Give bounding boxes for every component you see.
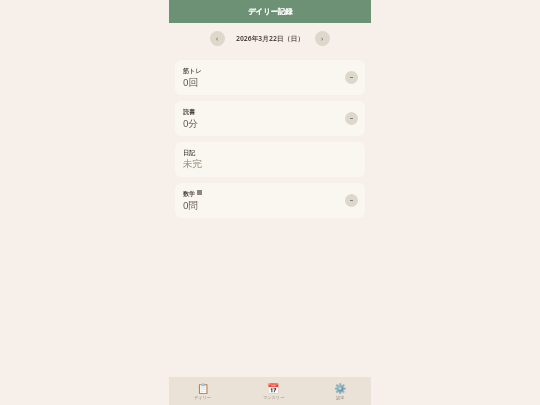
staticText: 2026年3月22日（日） bbox=[236, 34, 304, 43]
button[interactable]: Decrease bbox=[345, 71, 358, 84]
staticText: デイリー記録 bbox=[248, 7, 293, 16]
button[interactable]: 📋 bbox=[169, 383, 237, 400]
button[interactable]: 📅 bbox=[240, 383, 307, 400]
button[interactable]: ⚙️ bbox=[307, 383, 374, 400]
staticText: 設定 bbox=[336, 395, 345, 400]
staticText: 読書 bbox=[183, 108, 196, 116]
staticText: 0問 bbox=[183, 199, 199, 212]
staticText: 0分 bbox=[183, 117, 199, 130]
staticText: 筋トレ bbox=[183, 67, 202, 75]
button[interactable]: Previous day bbox=[210, 31, 225, 46]
staticText: › bbox=[321, 34, 324, 44]
staticText: デイリー bbox=[194, 395, 212, 400]
button[interactable]: Decrease bbox=[345, 112, 358, 125]
staticText: ⚙️ bbox=[334, 383, 347, 395]
staticText: 日記 bbox=[183, 149, 196, 157]
button[interactable]: 日記 bbox=[175, 142, 365, 177]
button[interactable]: 数学 bbox=[175, 183, 365, 218]
staticText: 未完 bbox=[183, 158, 203, 170]
staticText: ‹ bbox=[216, 34, 219, 44]
staticText: 📋 bbox=[197, 383, 210, 395]
button[interactable]: 筋トレ bbox=[175, 60, 365, 95]
button[interactable]: Decrease bbox=[345, 194, 358, 207]
button[interactable]: Next day bbox=[315, 31, 330, 46]
staticText: 0回 bbox=[183, 76, 199, 89]
staticText: マンスリー bbox=[263, 395, 285, 400]
staticText: 📅 bbox=[267, 383, 280, 395]
button[interactable]: 読書 bbox=[175, 101, 365, 136]
staticText: 数学 bbox=[183, 190, 196, 198]
